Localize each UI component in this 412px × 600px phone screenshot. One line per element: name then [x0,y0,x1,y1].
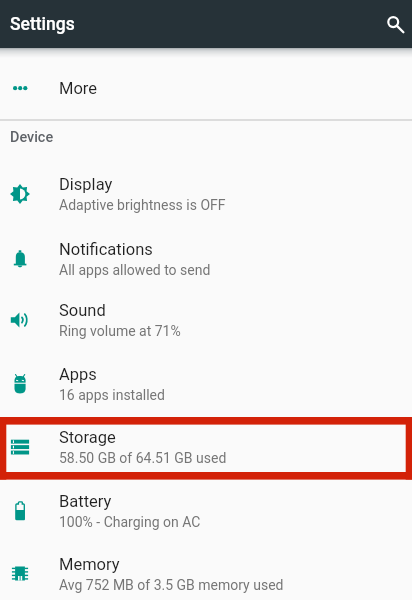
staticText: Storage [59,428,116,447]
staticText: 16 apps installed [59,387,165,403]
button[interactable]: Storage [0,415,412,478]
staticText: Sound [59,301,106,320]
staticText: Ring volume at 71% [59,323,181,339]
staticText: Adaptive brightness is OFF [59,197,226,213]
button[interactable]: Search [368,2,412,46]
button[interactable]: Sound [0,288,412,351]
staticText: Display [59,175,113,194]
staticText: Avg 752 MB of 3.5 GB memory used [59,577,284,593]
staticText: Notifications [59,240,153,259]
staticText: Apps [59,365,97,384]
button[interactable]: Memory [0,542,412,600]
button[interactable]: Apps [0,352,412,415]
staticText: Device [10,129,54,146]
staticText: Memory [59,555,120,574]
button[interactable]: Battery [0,479,412,542]
staticText: 100% - Charging on AC [59,514,201,530]
button[interactable]: Display [0,162,412,225]
staticText: More [59,79,98,98]
staticText: 58.50 GB of 64.51 GB used [59,450,227,466]
staticText: Settings [10,14,75,35]
staticText: Battery [59,492,112,511]
button[interactable]: More [0,53,412,123]
button[interactable]: Notifications [0,227,412,290]
staticText: All apps allowed to send [59,262,211,278]
